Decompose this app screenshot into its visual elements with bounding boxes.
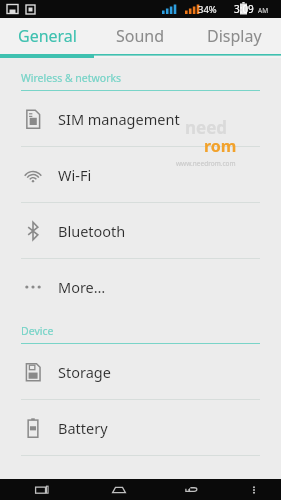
staticText: Storage xyxy=(58,362,111,382)
button[interactable]: Bluetooth xyxy=(0,203,281,258)
staticText: Display xyxy=(207,25,262,47)
staticText: www.needrom.com xyxy=(176,159,236,168)
button[interactable]: Storage xyxy=(0,344,281,399)
staticText: Bluetooth xyxy=(58,221,126,241)
button[interactable]: Menu xyxy=(227,479,281,500)
staticText: Sound xyxy=(116,25,165,47)
button[interactable]: Display xyxy=(187,18,281,54)
staticText: General xyxy=(18,25,77,47)
button[interactable]: More… xyxy=(0,259,281,314)
button[interactable]: Back xyxy=(155,479,227,500)
button[interactable]: Sound xyxy=(94,18,187,54)
button[interactable]: Home xyxy=(83,479,155,500)
button[interactable]: SIM management xyxy=(0,91,281,146)
staticText: Battery xyxy=(58,418,108,438)
staticText: need xyxy=(185,116,228,139)
button[interactable]: Battery xyxy=(0,400,281,455)
staticText: 3:09 xyxy=(234,2,254,16)
staticText: 34% xyxy=(198,3,217,16)
staticText: Wireless & networks xyxy=(21,71,122,85)
button[interactable]: Recent apps xyxy=(0,479,83,500)
button[interactable]: Wi-Fi xyxy=(0,147,281,202)
staticText: Wi-Fi xyxy=(58,165,92,185)
staticText: AM xyxy=(258,6,269,15)
staticText: More… xyxy=(58,277,106,297)
staticText: rom xyxy=(204,135,237,157)
button[interactable]: General xyxy=(0,18,94,54)
staticText: SIM management xyxy=(58,109,180,129)
staticText: Device xyxy=(21,324,54,338)
